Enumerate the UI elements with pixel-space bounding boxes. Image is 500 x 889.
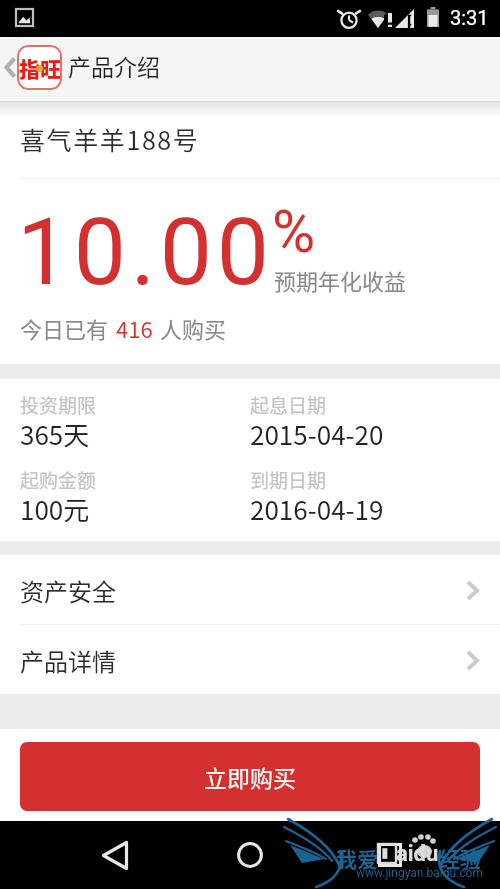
button[interactable]: Recents — [350, 821, 430, 889]
staticText: 416 — [116, 312, 153, 344]
staticText: 3:31 — [450, 6, 489, 29]
button[interactable]: Back — [75, 821, 155, 889]
staticText: 产品详情 — [20, 643, 116, 678]
staticText: 产品介绍 — [68, 49, 160, 82]
staticText: 人购买 — [160, 312, 227, 344]
staticText: 预期年化收益 — [274, 264, 407, 296]
staticText: aidu — [396, 841, 439, 867]
staticText: 资产安全 — [20, 573, 116, 608]
staticText: % — [272, 197, 316, 266]
staticText: 起息日期 — [250, 391, 327, 419]
staticText: 100元 — [20, 490, 90, 528]
staticText: 投资期限 — [20, 391, 97, 419]
staticText: www.jingyan.baidu.com — [356, 866, 483, 880]
button[interactable]: Back — [0, 37, 20, 101]
button[interactable]: 资产安全 — [0, 555, 500, 625]
staticText: 今日已有 — [20, 312, 109, 344]
staticText: 立即购买 — [204, 760, 296, 793]
button[interactable]: Home — [210, 821, 290, 889]
staticText: 365天 — [20, 415, 90, 453]
staticText: 我爱 — [336, 843, 378, 873]
staticText: 起购金额 — [20, 466, 97, 494]
staticText: 2015-04-20 — [250, 415, 384, 453]
button[interactable]: 产品详情 — [0, 625, 500, 695]
staticText: 经验 — [439, 843, 481, 873]
staticText: 10.00 — [17, 198, 274, 307]
staticText: 2016-04-19 — [250, 490, 384, 528]
button[interactable]: 立即购买 — [20, 742, 480, 811]
staticText: 喜气羊羊188号 — [20, 121, 200, 157]
staticText: 指旺 — [19, 53, 61, 83]
staticText: 到期日期 — [250, 466, 327, 494]
